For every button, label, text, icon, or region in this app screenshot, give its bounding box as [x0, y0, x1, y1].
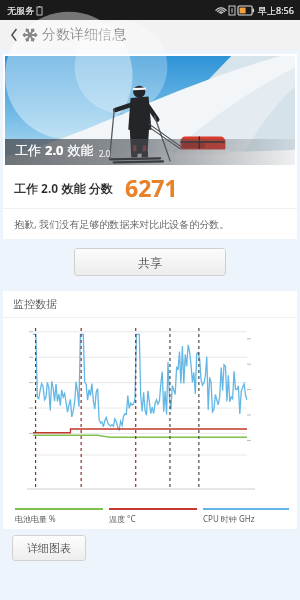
- staticText: 分数详细信息: [42, 26, 126, 44]
- staticText: 工作 2.0 效能 分数: [14, 180, 113, 196]
- staticText: 效能: [64, 141, 94, 159]
- staticText: 抱歉, 我们没有足够的数据来对比此设备的分数。: [14, 217, 230, 231]
- staticText: 无服务: [7, 5, 34, 16]
- button[interactable]: Back: [5, 22, 23, 48]
- staticText: 温度 °C: [109, 513, 136, 524]
- staticText: 工作: [15, 141, 45, 159]
- staticText: 详细图表: [27, 541, 71, 555]
- button[interactable]: 详细图表: [12, 535, 86, 561]
- staticText: 电池电量 %: [15, 513, 56, 524]
- staticText: 共享: [138, 255, 162, 270]
- staticText: 2.0: [99, 148, 111, 159]
- staticText: 2.0: [45, 141, 64, 159]
- staticText: 早上8:56: [258, 4, 294, 16]
- staticText: CPU 时钟 GHz: [203, 513, 255, 524]
- staticText: 监控数据: [13, 297, 57, 311]
- button[interactable]: 共享: [74, 248, 226, 276]
- staticText: 6271: [125, 172, 178, 203]
